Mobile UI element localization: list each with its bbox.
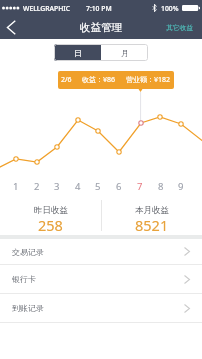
staticText: 7	[137, 180, 143, 193]
staticText: 5	[95, 180, 101, 193]
button[interactable]: 其它收益	[160, 15, 202, 39]
staticText: 收益：¥86	[82, 75, 116, 85]
staticText: 银行卡	[12, 274, 36, 284]
staticText: 其它收益	[166, 23, 194, 32]
staticText: 258	[38, 215, 63, 235]
staticText: 月	[121, 48, 129, 58]
staticText: 100%	[161, 4, 179, 13]
staticText: 本月收益	[135, 205, 169, 216]
staticText: 交易记录	[12, 247, 44, 257]
staticText: 收益管理	[80, 21, 122, 34]
button[interactable]: 银行卡	[0, 265, 202, 294]
staticText: 2	[34, 180, 40, 193]
staticText: 营业额：¥182	[126, 75, 171, 85]
button[interactable]: 交易记录	[0, 239, 202, 265]
staticText: 8521	[135, 215, 169, 235]
staticText: 8	[158, 180, 164, 193]
staticText: WELLGRAPHIC	[23, 4, 70, 13]
staticText: 2/6	[61, 75, 72, 85]
staticText: 昨日收益	[34, 205, 68, 216]
staticText: 3	[54, 180, 60, 193]
button[interactable]: 日	[54, 44, 101, 61]
button[interactable]: 到账记录	[0, 294, 202, 323]
button[interactable]: 月	[101, 44, 148, 61]
staticText: 4	[75, 180, 81, 193]
staticText: 7:10 PM	[86, 4, 112, 13]
staticText: 9	[178, 180, 184, 193]
staticText: 到账记录	[12, 303, 44, 313]
button[interactable]: Back	[0, 15, 22, 39]
staticText: 1	[13, 180, 19, 193]
staticText: 6	[116, 180, 122, 193]
staticText: 日	[74, 48, 82, 58]
